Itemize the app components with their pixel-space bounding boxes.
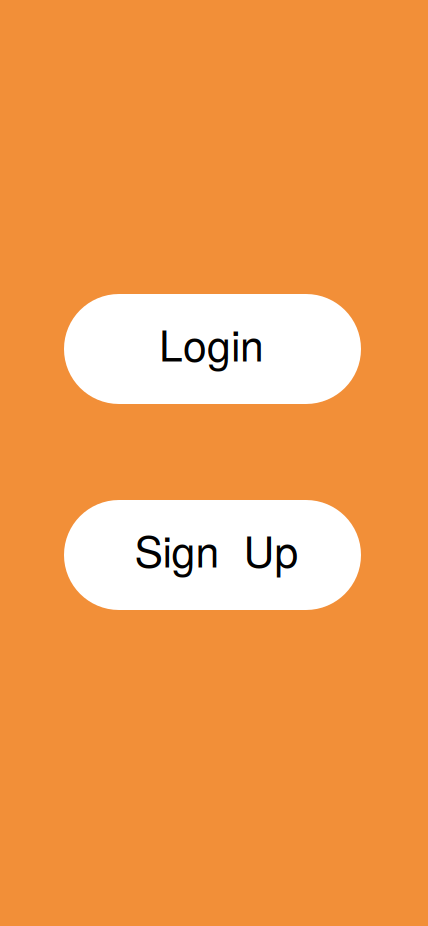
staticText: Sign Up xyxy=(134,518,298,580)
button[interactable]: Sign Up xyxy=(64,500,361,610)
button[interactable]: Login xyxy=(64,294,361,404)
staticText: Login xyxy=(159,312,264,374)
